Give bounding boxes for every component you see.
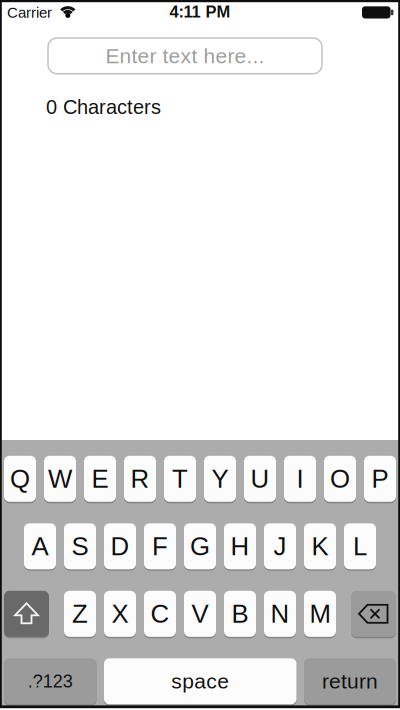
button[interactable]: T: [164, 456, 196, 502]
staticText: C: [150, 599, 169, 628]
button[interactable]: K: [304, 523, 336, 569]
button[interactable]: L: [344, 523, 376, 569]
staticText: 0 Characters: [46, 96, 161, 118]
button[interactable]: B: [224, 591, 256, 637]
button[interactable]: V: [184, 591, 216, 637]
button[interactable]: Y: [204, 456, 236, 502]
button[interactable]: S: [64, 523, 96, 569]
button[interactable]: P: [364, 456, 396, 502]
button[interactable]: R: [124, 456, 156, 502]
staticText: .?123: [28, 671, 73, 691]
staticText: K: [311, 532, 328, 561]
button[interactable]: U: [244, 456, 276, 502]
staticText: M: [309, 599, 330, 628]
staticText: return: [322, 670, 378, 693]
staticText: W: [48, 464, 72, 493]
staticText: J: [273, 532, 286, 561]
button[interactable]: A: [24, 523, 56, 569]
button[interactable]: X: [104, 591, 136, 637]
button[interactable]: N: [264, 591, 296, 637]
button[interactable]: space: [104, 658, 296, 704]
staticText: I: [296, 464, 303, 493]
staticText: O: [330, 464, 350, 493]
staticText: L: [353, 532, 367, 561]
staticText: A: [31, 532, 48, 561]
staticText: T: [172, 464, 188, 493]
button[interactable]: Shift: [4, 591, 49, 637]
staticText: X: [111, 599, 128, 628]
staticText: Carrier: [7, 4, 52, 21]
button[interactable]: F: [144, 523, 176, 569]
staticText: B: [231, 599, 248, 628]
button[interactable]: Delete: [351, 591, 396, 637]
staticText: N: [270, 599, 289, 628]
staticText: E: [91, 464, 108, 493]
staticText: Z: [72, 599, 88, 628]
button[interactable]: Q: [4, 456, 36, 502]
staticText: F: [152, 532, 168, 561]
button[interactable]: H: [224, 523, 256, 569]
button[interactable]: I: [284, 456, 316, 502]
staticText: Enter text here...: [105, 44, 264, 68]
button[interactable]: C: [144, 591, 176, 637]
staticText: H: [230, 532, 249, 561]
button[interactable]: D: [104, 523, 136, 569]
button[interactable]: Enter text here...: [48, 38, 322, 74]
button[interactable]: W: [44, 456, 76, 502]
button[interactable]: E: [84, 456, 116, 502]
staticText: P: [371, 464, 388, 493]
button[interactable]: Z: [64, 591, 96, 637]
staticText: D: [110, 532, 129, 561]
staticText: R: [130, 464, 149, 493]
staticText: space: [171, 670, 229, 693]
button[interactable]: G: [184, 523, 216, 569]
staticText: Q: [10, 464, 30, 493]
button[interactable]: J: [264, 523, 296, 569]
staticText: V: [191, 599, 208, 628]
button[interactable]: M: [304, 591, 336, 637]
staticText: G: [190, 532, 210, 561]
staticText: 4:11 PM: [169, 3, 230, 21]
button[interactable]: O: [324, 456, 356, 502]
staticText: S: [71, 532, 88, 561]
staticText: Y: [211, 464, 228, 493]
button[interactable]: return: [304, 658, 396, 704]
staticText: U: [250, 464, 269, 493]
button[interactable]: .?123: [4, 658, 96, 704]
